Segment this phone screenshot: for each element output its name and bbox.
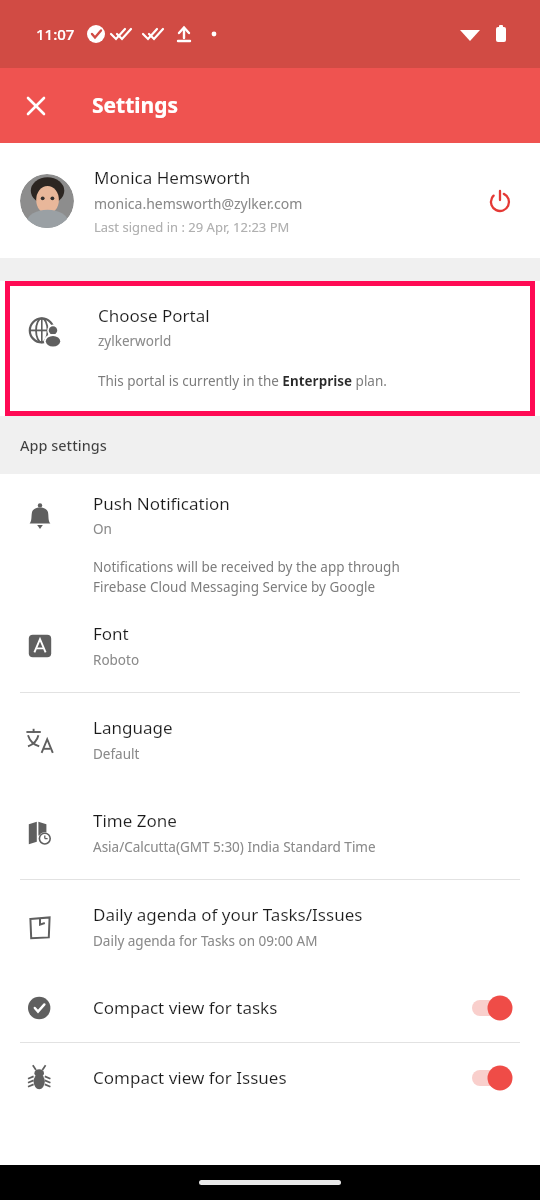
button[interactable]: Language [0, 693, 540, 786]
button[interactable]: Compact view for Issues [0, 1043, 540, 1112]
staticText: Last signed in : 29 Apr, 12:23 PM [94, 218, 290, 236]
staticText: zylkerworld [98, 332, 172, 350]
staticText: On [93, 520, 112, 538]
button[interactable]: Monica Hemsworth [0, 143, 540, 258]
button[interactable]: Font [0, 599, 540, 692]
staticText: Choose Portal [98, 304, 210, 327]
staticText: Font [93, 622, 129, 645]
staticText: Daily agenda of your Tasks/Issues [93, 903, 363, 926]
button[interactable]: Time Zone [0, 786, 540, 879]
staticText: Asia/Calcutta(GMT 5:30) India Standard T… [93, 838, 376, 856]
staticText: App settings [20, 435, 107, 455]
staticText: Compact view for Issues [93, 1066, 470, 1089]
staticText: monica.hemsworth@zylker.com [94, 194, 303, 213]
staticText: Compact view for tasks [93, 996, 470, 1019]
staticText: Time Zone [93, 809, 177, 832]
staticText: Settings [92, 91, 179, 120]
staticText: Monica Hemsworth [94, 166, 251, 189]
button[interactable]: Compact view for tasks [0, 973, 540, 1042]
button[interactable]: Sign out [480, 181, 520, 221]
button[interactable]: Push Notification [0, 474, 540, 599]
staticText: Language [93, 716, 173, 739]
button[interactable]: Choose Portal [10, 286, 530, 411]
staticText: Notifications will be received by the ap… [93, 558, 400, 596]
staticText: 11:07 [36, 24, 75, 44]
button[interactable]: Daily agenda of your Tasks/Issues [0, 880, 540, 973]
staticText: Push Notification [93, 492, 230, 515]
staticText: Roboto [93, 651, 140, 669]
staticText: This portal is currently in the Enterpri… [98, 372, 387, 390]
staticText: Default [93, 745, 140, 763]
staticText: Daily agenda for Tasks on 09:00 AM [93, 932, 318, 950]
button[interactable]: Close [16, 86, 56, 126]
